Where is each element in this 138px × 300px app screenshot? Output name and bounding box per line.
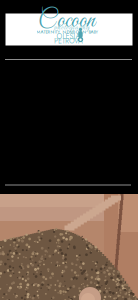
staticText: OLESIA [56, 31, 80, 42]
button[interactable]: Cocoon [5, 13, 132, 45]
staticText: MATERNITY NEWBORN BABY [36, 29, 98, 35]
staticText: photography [54, 23, 89, 33]
staticText: PETROVA [54, 36, 83, 46]
staticText: Cocoon [38, 6, 95, 36]
